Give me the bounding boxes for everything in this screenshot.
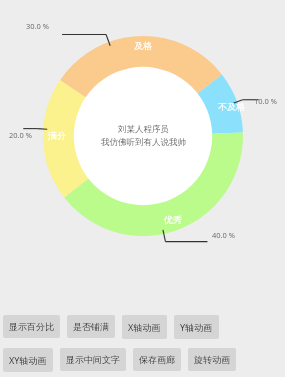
staticText: 30.0 % <box>26 21 50 31</box>
button[interactable]: 旋转动画 <box>188 348 236 371</box>
staticText: XY轴动画 <box>9 354 47 366</box>
staticText: 显示中间文字 <box>66 354 120 365</box>
button[interactable]: Y轴动画 <box>174 315 219 339</box>
staticText: 10.0 % <box>254 96 278 106</box>
button[interactable]: 显示百分比 <box>3 315 60 338</box>
staticText: 优秀 <box>164 214 182 225</box>
staticText: 不及格 <box>218 101 245 112</box>
staticText: 保存画廊 <box>139 354 175 365</box>
staticText: 旋转动画 <box>194 354 230 365</box>
staticText: 刘某人程序员 <box>118 124 169 135</box>
button[interactable]: 是否铺满 <box>67 315 115 338</box>
staticText: 满分 <box>48 130 66 141</box>
staticText: 及格 <box>134 40 152 51</box>
button[interactable]: 保存画廊 <box>133 348 181 371</box>
staticText: 我仿佛听到有人说我帅 <box>101 137 186 148</box>
staticText: X轴动画 <box>128 321 161 333</box>
staticText: 是否铺满 <box>73 321 109 332</box>
button[interactable]: 显示中间文字 <box>60 348 126 371</box>
staticText: 20.0 % <box>9 130 33 140</box>
button[interactable]: X轴动画 <box>122 315 167 339</box>
button[interactable]: XY轴动画 <box>3 348 53 372</box>
staticText: Y轴动画 <box>180 321 213 333</box>
staticText: 显示百分比 <box>9 321 54 332</box>
staticText: 40.0 % <box>212 230 236 240</box>
